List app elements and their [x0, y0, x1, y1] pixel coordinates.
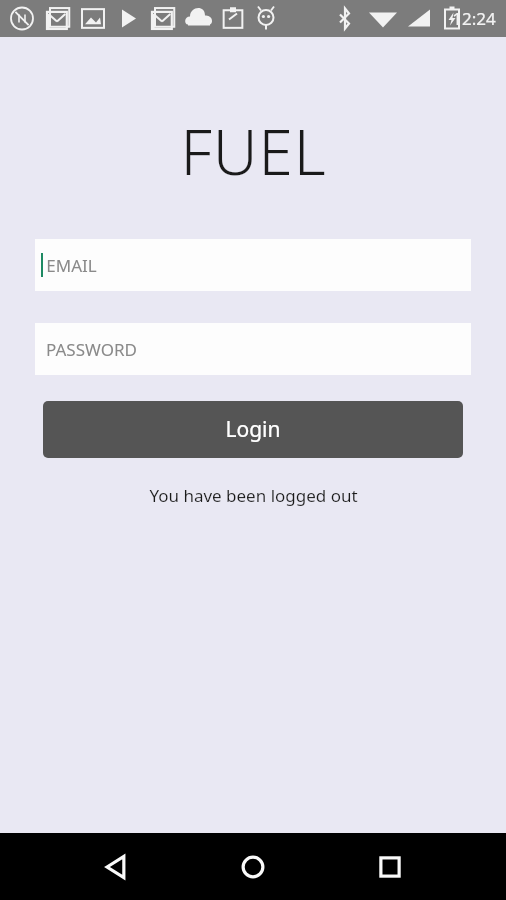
- staticText: Login: [225, 415, 281, 444]
- button[interactable]: Home: [226, 840, 280, 894]
- button[interactable]: PASSWORD: [35, 323, 471, 375]
- button[interactable]: Back: [89, 840, 143, 894]
- button[interactable]: EMAIL: [35, 239, 471, 291]
- staticText: PASSWORD: [46, 338, 137, 361]
- button[interactable]: Recent apps: [363, 840, 417, 894]
- staticText: 12:24: [452, 7, 496, 30]
- button[interactable]: Login: [43, 401, 463, 458]
- staticText: EMAIL: [46, 254, 97, 277]
- staticText: FUEL: [180, 109, 327, 193]
- staticText: You have been logged out: [149, 484, 358, 507]
